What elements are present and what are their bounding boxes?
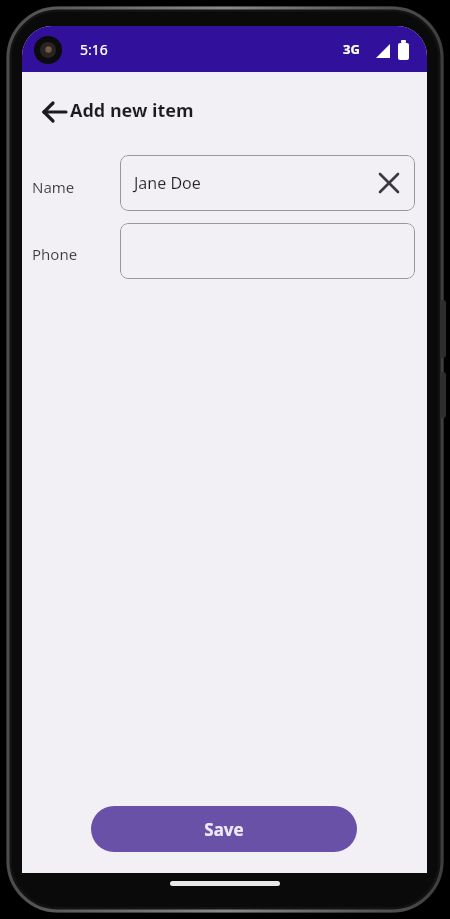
- button[interactable]: Back: [36, 90, 80, 134]
- staticText: Add new item: [70, 98, 194, 123]
- button[interactable]: Clear text: [369, 163, 409, 203]
- button[interactable]: Save: [91, 806, 357, 852]
- staticText: 5:16: [80, 40, 108, 59]
- button[interactable]: [120, 223, 415, 279]
- staticText: Phone: [32, 244, 78, 264]
- staticText: 3G: [343, 40, 360, 58]
- staticText: Save: [204, 818, 244, 841]
- button[interactable]: Jane Doe: [120, 155, 415, 211]
- staticText: Name: [32, 177, 75, 197]
- staticText: Jane Doe: [134, 172, 201, 194]
